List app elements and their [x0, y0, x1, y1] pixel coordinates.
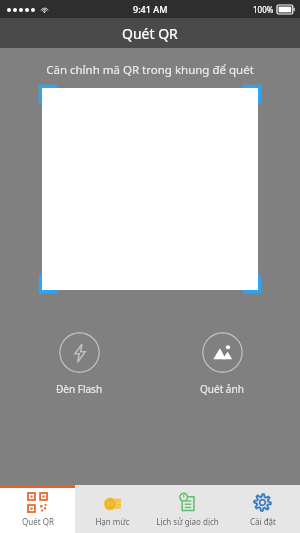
staticText: Quét QR	[122, 24, 178, 43]
staticText: Căn chỉnh mã QR trong khung để quét	[46, 62, 254, 78]
button[interactable]: Cài đặt	[225, 485, 300, 533]
button[interactable]: Lịch sử giao dịch	[150, 485, 225, 533]
staticText: Đèn Flash	[56, 382, 103, 396]
button[interactable]: Đèn Flash	[56, 332, 103, 396]
button[interactable]: Hạn mức	[75, 485, 150, 533]
staticText: Hạn mức	[95, 516, 130, 527]
staticText: 9:41 AM	[133, 3, 168, 15]
staticText: 100%	[253, 4, 274, 15]
staticText: Lịch sử giao dịch	[156, 516, 219, 527]
button[interactable]: Quét QR	[0, 485, 75, 533]
staticText: Cài đặt	[250, 516, 276, 527]
staticText: Quét ảnh	[200, 382, 244, 396]
button[interactable]: Quét ảnh	[200, 332, 244, 396]
staticText: Quét QR	[22, 516, 54, 527]
